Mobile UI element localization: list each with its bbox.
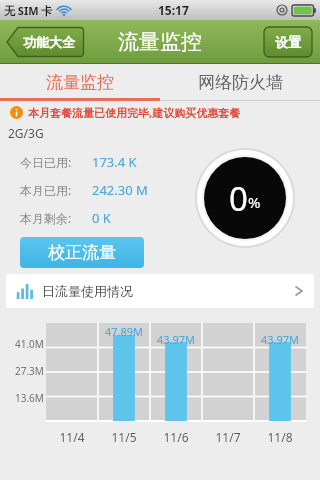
button[interactable]: 设置 xyxy=(264,27,312,57)
button[interactable]: 网络防火墙 xyxy=(160,64,320,101)
staticText: 网络防火墙 xyxy=(198,72,283,93)
staticText: 设置 xyxy=(275,34,301,50)
staticText: 15:17 xyxy=(158,2,189,18)
staticText: 2G/3G xyxy=(8,125,44,141)
staticText: 11/6 xyxy=(163,429,189,445)
staticText: 校正流量 xyxy=(48,242,116,263)
staticText: 242.30 M xyxy=(92,181,148,199)
staticText: 本月已用: xyxy=(20,182,72,198)
staticText: 日流量使用情况 xyxy=(42,283,133,299)
staticText: 0 xyxy=(229,176,248,221)
staticText: 流量监控 xyxy=(46,72,114,93)
staticText: 173.4 K xyxy=(92,153,137,171)
staticText: 本月剩余: xyxy=(20,210,72,226)
staticText: 11/7 xyxy=(215,429,241,445)
button[interactable]: 校正流量 xyxy=(20,237,144,268)
button[interactable]: 日流量使用情况 xyxy=(6,274,314,308)
staticText: 11/4 xyxy=(59,429,85,445)
button[interactable]: 流量监控 xyxy=(0,64,160,101)
staticText: 41.0M xyxy=(15,337,44,351)
button[interactable]: 功能大全 xyxy=(6,27,84,57)
staticText: 27.3M xyxy=(15,364,44,378)
staticText: 43.97M xyxy=(157,332,196,347)
staticText: 本月套餐流量已使用完毕,建议购买优惠套餐 xyxy=(28,105,241,120)
staticText: 47.89M xyxy=(105,324,144,339)
staticText: 0 K xyxy=(92,209,111,227)
staticText: 流量监控 xyxy=(118,29,202,55)
staticText: 无 SIM 卡 xyxy=(4,3,53,18)
staticText: 11/8 xyxy=(267,429,293,445)
staticText: 功能大全 xyxy=(23,34,75,50)
staticText: 11/5 xyxy=(111,429,137,445)
staticText: 13.6M xyxy=(15,391,44,405)
staticText: % xyxy=(248,192,261,212)
staticText: 43.97M xyxy=(261,332,300,347)
staticText: 今日已用: xyxy=(20,154,72,170)
